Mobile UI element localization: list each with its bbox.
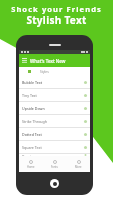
button[interactable]: Strike Through [19,115,90,127]
staticText: Square Text [22,145,42,150]
button[interactable]: Square Text [19,141,90,153]
staticText: Cursive [22,154,35,156]
staticText: Tiny Text [22,93,37,98]
staticText: Fonts [51,165,58,169]
button[interactable]: What's Text New [19,54,90,67]
staticText: Stylish Text [26,13,87,27]
staticText: What's Text New [30,58,66,64]
button[interactable]: Dotted Text [19,128,90,140]
button[interactable]: Fonts [42,160,66,169]
staticText: Bubble Text [22,80,43,85]
button[interactable]: Home [19,160,42,169]
button[interactable]: Cursive [19,154,90,156]
staticText: Styles [40,70,49,74]
button[interactable]: Tiny Text [19,89,90,101]
button[interactable]: Home [50,179,59,188]
button[interactable]: Bubble Text [19,76,90,88]
button[interactable]: More [66,160,90,169]
staticText: Home [27,165,35,169]
staticText: Shock your Friends [11,4,102,14]
staticText: Dotted Text [22,132,42,137]
button[interactable]: Upside Down [19,102,90,114]
staticText: Upside Down [22,106,45,111]
staticText: More [75,165,82,169]
staticText: Strike Through [22,119,48,124]
